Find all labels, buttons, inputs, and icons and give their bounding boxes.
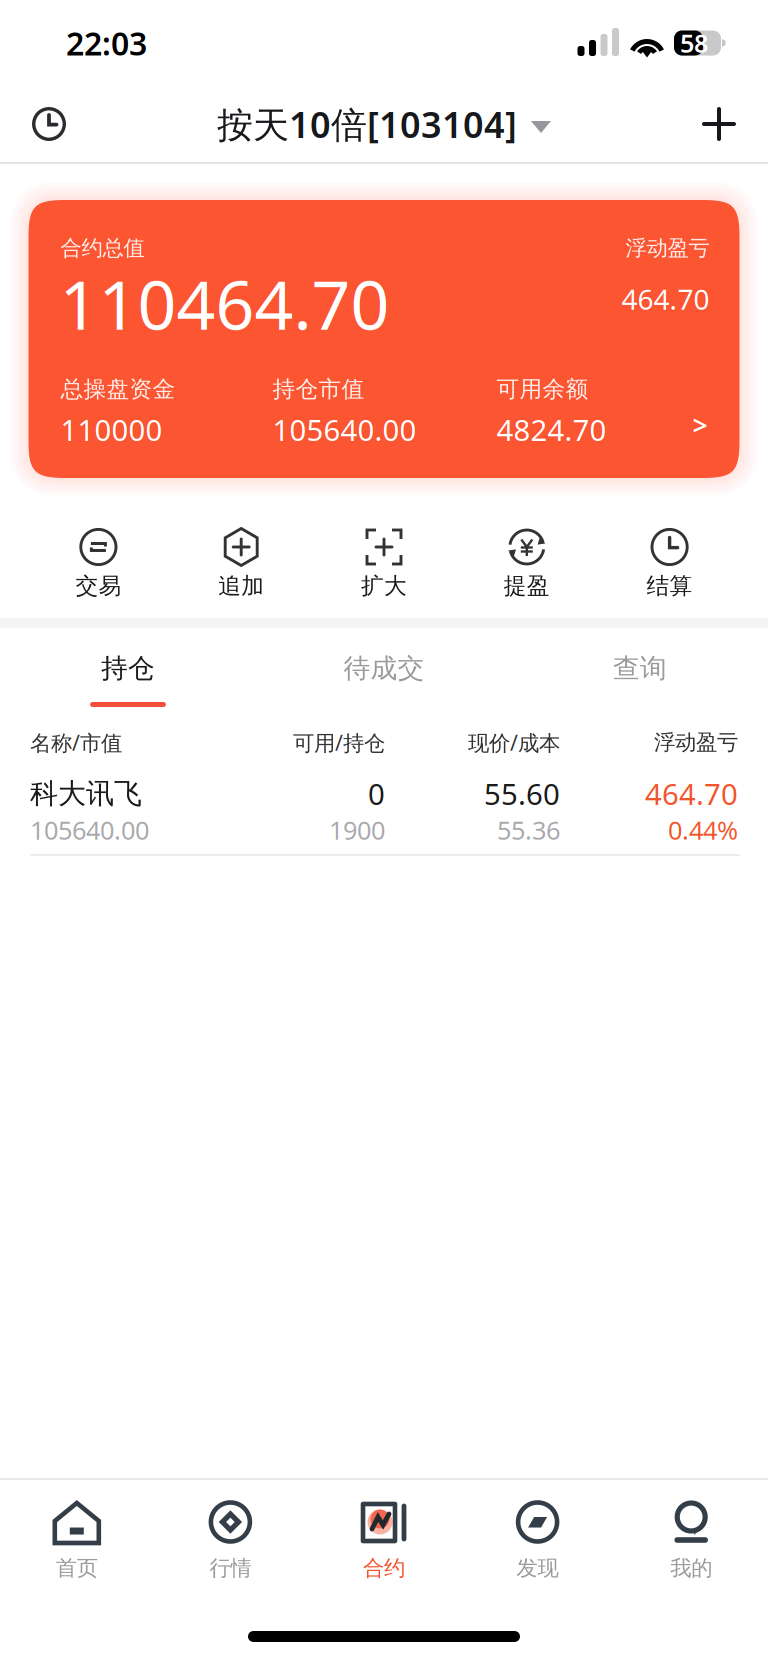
button[interactable]: 结算 — [598, 490, 741, 618]
button[interactable]: 我的 — [614, 1480, 768, 1584]
button[interactable]: 按天10倍[103104] — [217, 100, 551, 148]
button[interactable]: 发现 — [461, 1480, 614, 1584]
staticText: 首页 — [56, 1555, 98, 1581]
button[interactable]: Add — [686, 91, 752, 157]
staticText: 0 — [368, 774, 385, 813]
staticText: 105640.00 — [30, 813, 149, 847]
button[interactable]: 合约总值 — [28, 200, 739, 478]
staticText: 现价/成本 — [468, 728, 560, 757]
staticText: 可用/持仓 — [293, 728, 385, 757]
button[interactable]: 提盈 — [455, 490, 598, 618]
staticText: 浮动盈亏 — [654, 729, 738, 756]
staticText: 58 — [680, 26, 708, 60]
staticText: 合约 — [363, 1555, 405, 1581]
staticText: 105640.00 — [272, 410, 416, 449]
staticText: 合约总值 — [60, 235, 144, 261]
staticText: 4824.70 — [496, 410, 606, 449]
button[interactable]: 扩大 — [313, 490, 455, 618]
staticText: 发现 — [517, 1555, 559, 1581]
button[interactable]: 首页 — [0, 1480, 154, 1584]
staticText: 我的 — [670, 1555, 712, 1581]
staticText: 0.44% — [668, 813, 738, 847]
button[interactable]: 持仓 — [0, 628, 256, 724]
staticText: 464.70 — [621, 280, 709, 317]
staticText: 追加 — [218, 572, 264, 600]
staticText: 按天10倍[103104] — [217, 100, 517, 148]
button[interactable]: 追加 — [170, 490, 313, 618]
staticText: 22:03 — [66, 22, 147, 64]
staticText: 总操盘资金 — [60, 375, 175, 403]
staticText: 交易 — [75, 572, 121, 600]
staticText: 464.70 — [645, 774, 738, 813]
staticText: 结算 — [647, 572, 693, 600]
staticText: 55.36 — [497, 813, 560, 847]
staticText: 110464.70 — [59, 258, 389, 348]
staticText: 可用余额 — [496, 375, 588, 403]
button[interactable]: 查询 — [512, 628, 768, 724]
staticText: > — [692, 407, 707, 443]
staticText: 提盈 — [504, 572, 550, 600]
button[interactable]: 交易 — [27, 490, 170, 618]
button[interactable]: 科大讯飞 — [0, 761, 768, 854]
staticText: 待成交 — [343, 652, 424, 685]
staticText: 查询 — [613, 652, 667, 685]
staticText: 1900 — [329, 813, 385, 847]
button[interactable]: 待成交 — [256, 628, 512, 724]
staticText: 扩大 — [361, 572, 407, 600]
staticText: 行情 — [209, 1555, 251, 1581]
staticText: 55.60 — [484, 774, 560, 813]
button[interactable]: 合约 — [307, 1480, 461, 1584]
staticText: 持仓市值 — [272, 375, 364, 403]
staticText: 浮动盈亏 — [625, 235, 709, 261]
staticText: 科大讯飞 — [30, 776, 142, 811]
button[interactable]: 行情 — [154, 1480, 307, 1584]
staticText: 名称/市值 — [30, 728, 122, 757]
button[interactable]: History — [16, 91, 82, 157]
staticText: 持仓 — [101, 652, 155, 685]
staticText: 110000 — [60, 410, 162, 449]
